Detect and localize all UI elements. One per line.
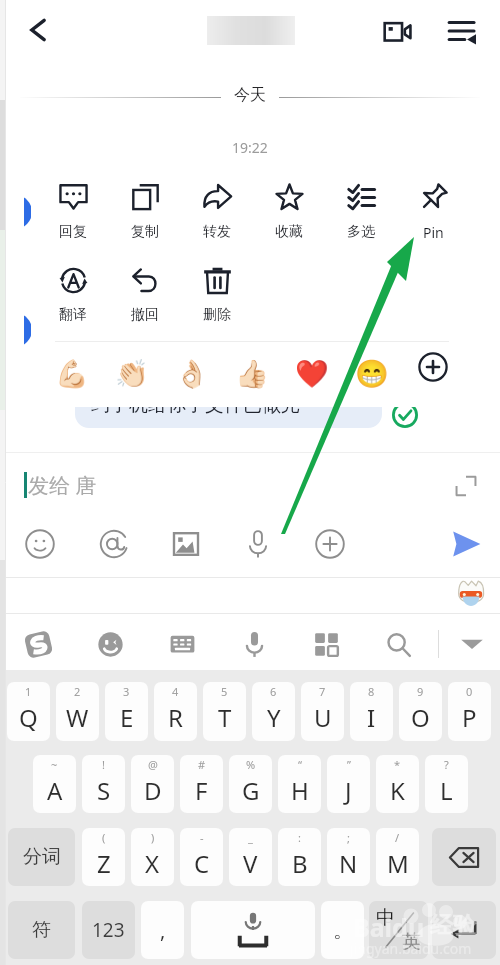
button[interactable]: 删除 [181, 258, 253, 334]
button[interactable]: Mention [92, 522, 136, 566]
button[interactable]: Hide keyboard [446, 618, 498, 670]
button[interactable]: 6 [252, 682, 295, 741]
staticText: 7 [319, 684, 326, 699]
button[interactable]: 收藏 [253, 175, 325, 251]
button[interactable]: Keyboard layout [158, 618, 206, 670]
button[interactable]: 7 [301, 682, 344, 741]
button[interactable]: # [180, 755, 223, 813]
button[interactable]: 3 [105, 682, 148, 741]
button[interactable]: Panels [302, 618, 350, 670]
button[interactable]: _ [229, 828, 272, 886]
button[interactable]: / [376, 828, 419, 886]
staticText: R [168, 701, 183, 734]
button[interactable]: 0 [448, 682, 491, 741]
staticText: O [411, 701, 430, 734]
staticText: I [367, 701, 376, 734]
button[interactable]: 8 [350, 682, 393, 741]
staticText: V [243, 847, 258, 880]
staticText: 。 [333, 918, 353, 943]
staticText: L [440, 774, 453, 807]
button[interactable]: 4 [154, 682, 197, 741]
staticText: D [144, 774, 162, 807]
button[interactable]: Emoji [86, 618, 134, 670]
button[interactable]: Expand input [450, 470, 482, 502]
staticText: 3 [123, 684, 130, 699]
button[interactable]: ~ [33, 755, 76, 813]
button[interactable]: Menu [441, 10, 483, 52]
staticText: 翻译 [59, 306, 87, 324]
button[interactable]: 复制 [109, 175, 181, 251]
staticText: 中 [376, 906, 395, 930]
button[interactable]: Voice message [236, 522, 280, 566]
button[interactable]: Search [374, 618, 422, 670]
button[interactable]: Enter [432, 901, 496, 959]
button[interactable]: 。 [321, 901, 364, 959]
button[interactable]: Switch Chinese English [369, 901, 428, 959]
staticText: 8 [368, 684, 375, 699]
button[interactable]: 5 [203, 682, 246, 741]
staticText: 4 [172, 684, 179, 699]
staticText: 👌🏻 [175, 358, 209, 390]
button[interactable]: 转发 [181, 175, 253, 251]
button[interactable]: % [229, 755, 272, 813]
button[interactable]: ) [131, 828, 174, 886]
button[interactable]: 💪🏻 [45, 344, 99, 404]
button[interactable]: * [376, 755, 419, 813]
button[interactable]: 👏🏻 [105, 344, 159, 404]
button[interactable]: Voice input [230, 618, 278, 670]
button[interactable]: ” [327, 755, 370, 813]
staticText: Z [97, 847, 111, 880]
button[interactable]: 👌🏻 [165, 344, 219, 404]
staticText: ) [151, 830, 155, 845]
button[interactable]: Back [18, 10, 58, 50]
button[interactable]: 分词 [8, 828, 75, 886]
staticText: 多选 [347, 223, 375, 241]
button[interactable]: Photo [164, 522, 208, 566]
staticText: 转发 [203, 223, 231, 241]
button[interactable]: ; [327, 828, 370, 886]
staticText: 约手机给你了文件已做完 [91, 393, 300, 417]
button[interactable]: ? [425, 755, 468, 813]
button[interactable]: 2 [56, 682, 99, 741]
button[interactable]: Backspace [432, 828, 496, 886]
button[interactable]: , [141, 901, 184, 959]
button[interactable]: ( [82, 828, 125, 886]
staticText: G [242, 774, 260, 807]
staticText: , [160, 917, 166, 944]
button[interactable]: Send [444, 522, 488, 566]
button[interactable]: 😁 [345, 344, 399, 404]
button[interactable]: 123 [82, 901, 135, 959]
button[interactable]: More reactions [411, 345, 455, 389]
button[interactable]: @ [131, 755, 174, 813]
button[interactable]: Video call [376, 10, 418, 52]
button[interactable]: 回复 [37, 175, 109, 251]
button[interactable]: : [278, 828, 321, 886]
staticText: E [120, 701, 134, 734]
button[interactable]: - [180, 828, 223, 886]
staticText: H [291, 774, 309, 807]
button[interactable]: Space [191, 901, 315, 959]
button[interactable]: Emoji [18, 522, 62, 566]
button[interactable]: 1 [7, 682, 50, 741]
button[interactable]: 👍🏻 [225, 344, 279, 404]
button[interactable]: 多选 [325, 175, 397, 251]
button[interactable]: 符 [8, 901, 75, 959]
button[interactable]: 9 [399, 682, 442, 741]
staticText: 今天 [234, 85, 266, 105]
staticText: 😁 [355, 358, 389, 390]
button[interactable]: 翻译 [37, 258, 109, 334]
button[interactable]: Sogou input [14, 618, 62, 670]
staticText: B [292, 847, 308, 880]
button[interactable]: 撤回 [109, 258, 181, 334]
staticText: ? [444, 757, 449, 772]
staticText: Pin [423, 223, 444, 242]
button[interactable]: ! [82, 755, 125, 813]
staticText: _ [248, 830, 253, 845]
button[interactable]: “ [278, 755, 321, 813]
staticText: K [390, 774, 405, 807]
button[interactable]: ❤️ [285, 344, 339, 404]
button[interactable]: Pin [397, 175, 469, 251]
staticText: @ [148, 757, 158, 772]
button[interactable]: More options [308, 522, 352, 566]
staticText: 19:22 [232, 138, 268, 157]
